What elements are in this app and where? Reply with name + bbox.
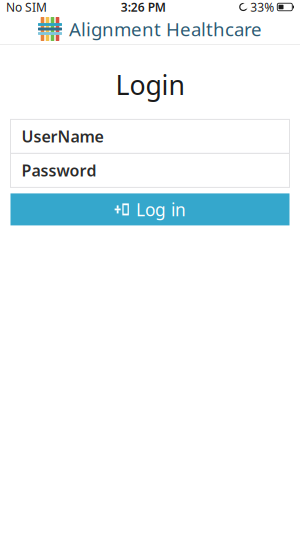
button[interactable]: Log in bbox=[10, 193, 289, 225]
staticText: Alignment Healthcare bbox=[69, 17, 262, 41]
staticText: 33% bbox=[250, 0, 274, 15]
staticText: Login bbox=[115, 67, 184, 102]
button[interactable]: UserName bbox=[10, 119, 289, 153]
staticText: UserName bbox=[21, 126, 103, 147]
staticText: Log in bbox=[136, 198, 186, 221]
button[interactable]: Password bbox=[10, 153, 289, 187]
staticText: Password bbox=[21, 160, 96, 181]
staticText: No SIM bbox=[6, 0, 47, 15]
staticText: 3:26 PM bbox=[121, 0, 166, 15]
